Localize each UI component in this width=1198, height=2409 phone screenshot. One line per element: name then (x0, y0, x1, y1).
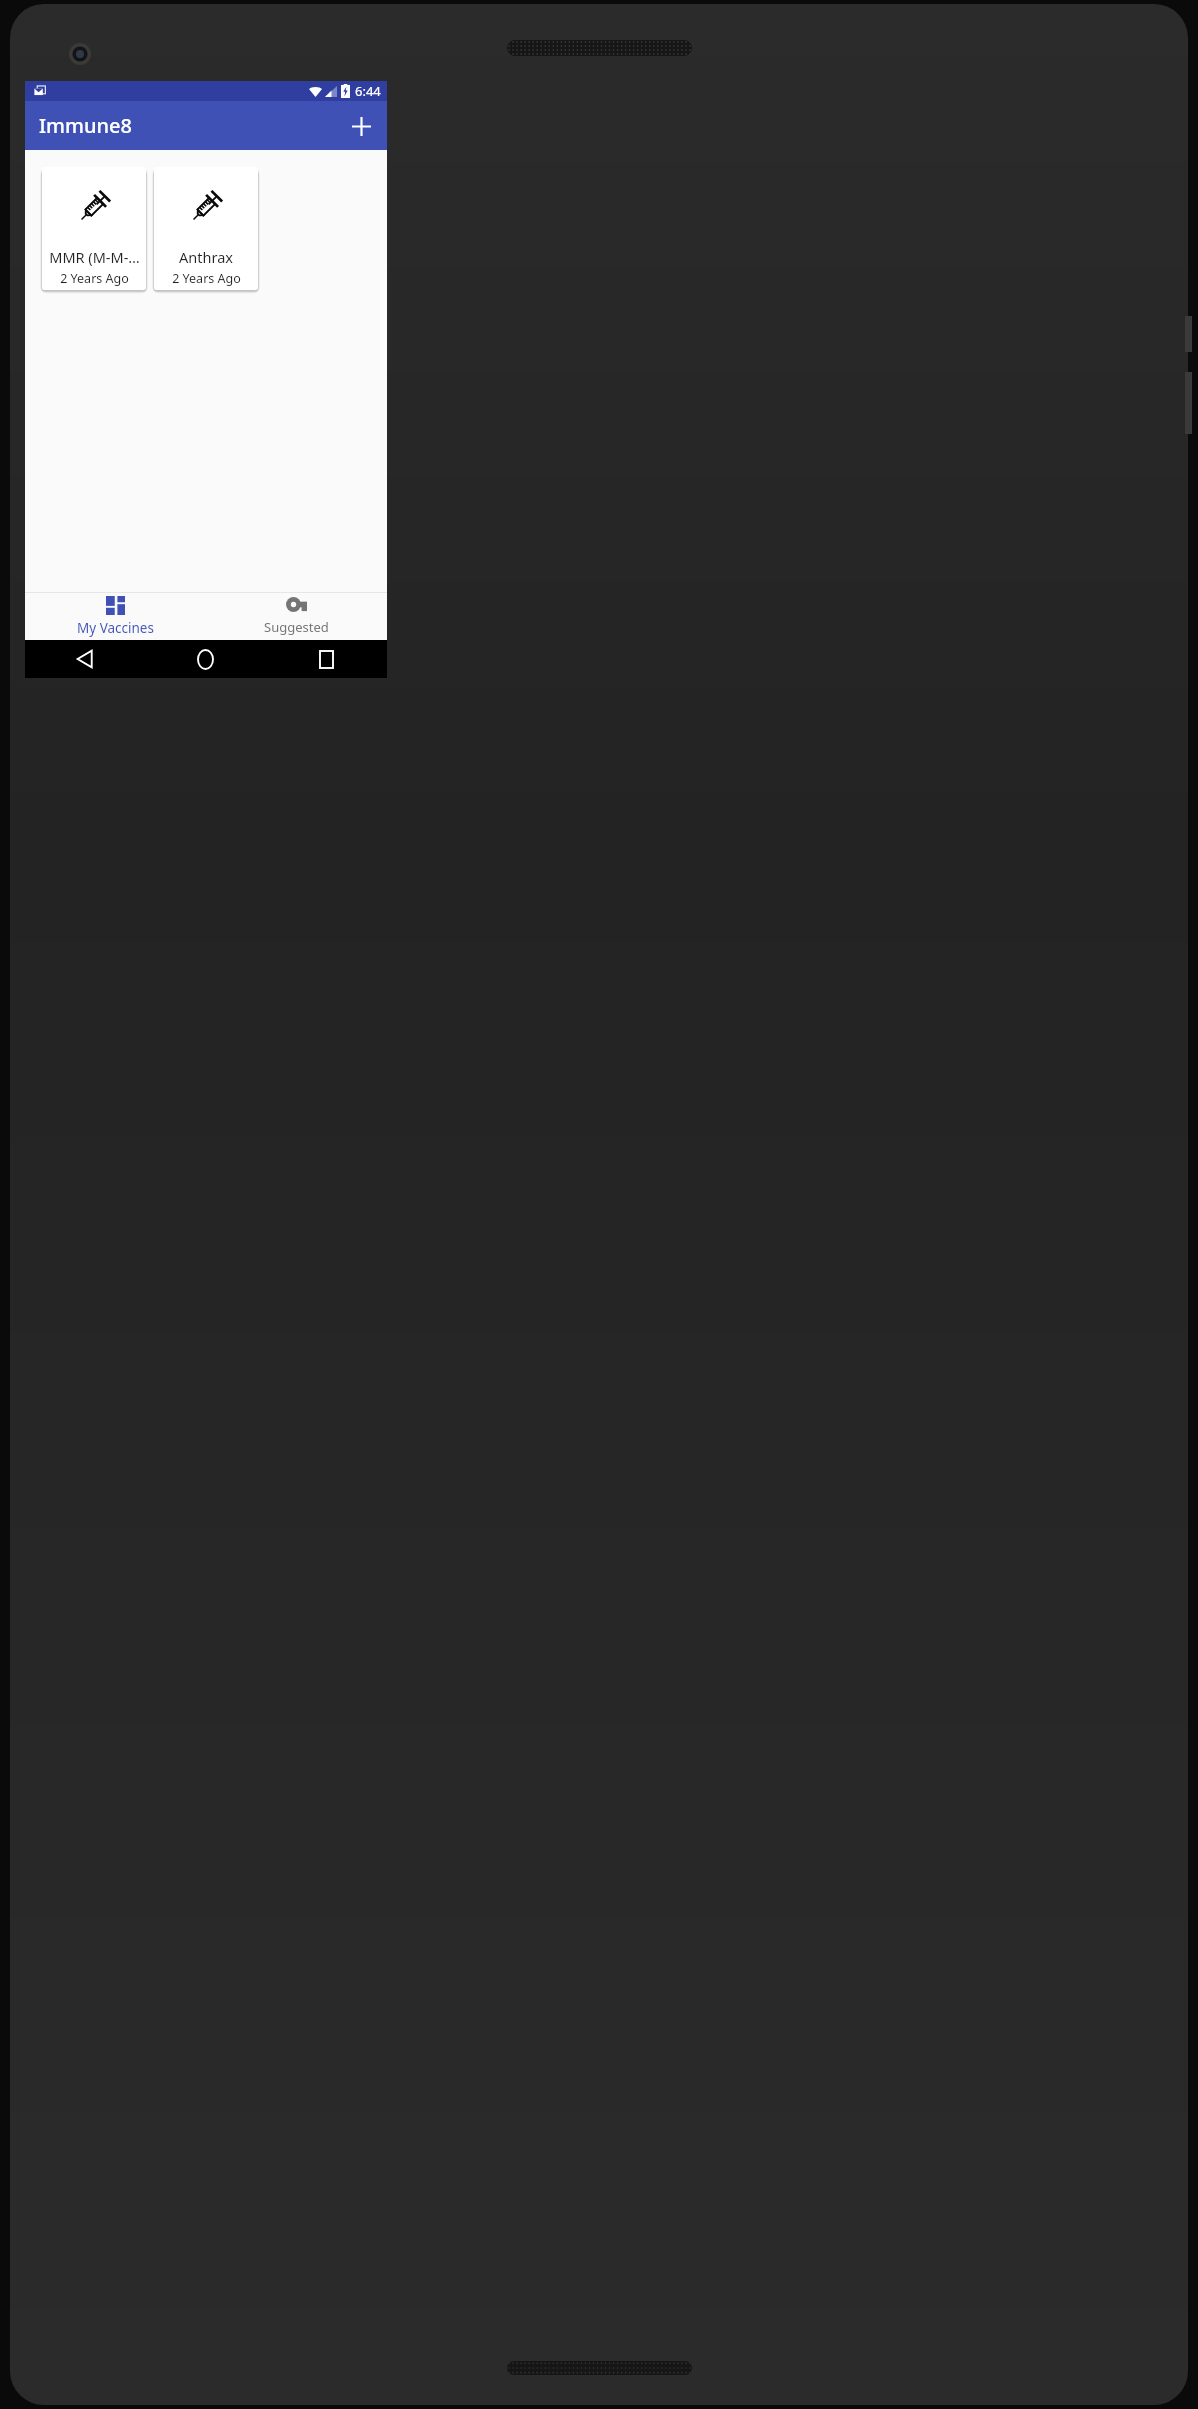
staticText: 2 Years Ago (172, 270, 241, 287)
button[interactable]: Add vaccine (341, 106, 381, 146)
staticText: 2 Years Ago (60, 270, 129, 287)
button[interactable]: Back (25, 640, 145, 678)
staticText: Immune8 (39, 112, 132, 139)
button[interactable]: Suggested (206, 593, 387, 640)
button[interactable]: MMR (M-M-… (42, 167, 146, 290)
staticText: MMR (M-M-… (49, 247, 140, 267)
button[interactable]: Recent apps (266, 640, 387, 678)
staticText: 6:44 (355, 82, 381, 100)
button[interactable]: Home (145, 640, 266, 678)
button[interactable]: My Vaccines (25, 593, 206, 640)
staticText: Anthrax (179, 247, 233, 267)
staticText: My Vaccines (77, 619, 154, 637)
staticText: Suggested (264, 618, 329, 636)
button[interactable]: Anthrax (154, 167, 258, 290)
